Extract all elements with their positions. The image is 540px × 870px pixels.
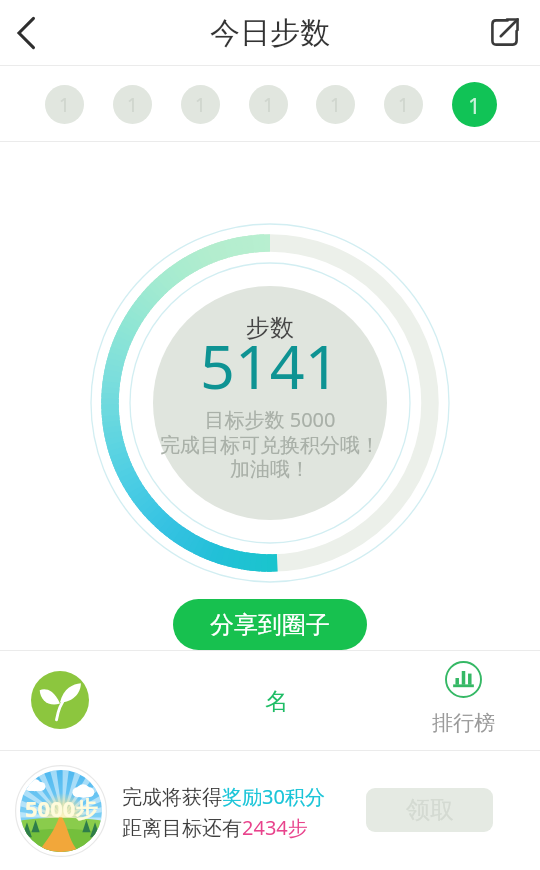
- button[interactable]: 1: [452, 82, 497, 127]
- button[interactable]: 1: [249, 85, 288, 124]
- button[interactable]: 名: [232, 667, 320, 735]
- staticText: 5141: [200, 324, 340, 407]
- button[interactable]: 1: [113, 85, 152, 124]
- staticText: 名: [265, 687, 288, 716]
- button[interactable]: 排行榜: [413, 655, 513, 747]
- staticText: 1: [195, 92, 206, 118]
- staticText: 5000步: [25, 793, 98, 823]
- staticText: 步数: [246, 313, 294, 343]
- button[interactable]: Back: [0, 0, 52, 65]
- staticText: 1: [468, 90, 481, 120]
- staticText: 1: [59, 92, 70, 118]
- staticText: 完成将获得奖励30积分: [122, 783, 325, 810]
- staticText: 1: [127, 92, 138, 118]
- button[interactable]: 领取: [366, 788, 493, 832]
- button[interactable]: Plant: [16, 656, 104, 744]
- staticText: 距离目标还有2434步: [122, 814, 308, 841]
- button[interactable]: 1: [181, 85, 220, 124]
- button[interactable]: Share: [478, 0, 530, 65]
- staticText: 分享到圈子: [210, 610, 330, 640]
- staticText: 排行榜: [432, 710, 495, 736]
- button[interactable]: 1: [316, 85, 355, 124]
- staticText: 1: [263, 92, 274, 118]
- staticText: 1: [398, 92, 409, 118]
- staticText: 今日步数: [210, 14, 330, 52]
- staticText: 领取: [406, 795, 454, 825]
- staticText: 1: [330, 92, 341, 118]
- button[interactable]: 1: [384, 85, 423, 124]
- staticText: 目标步数 5000 完成目标可兑换积分哦！ 加油哦！: [160, 406, 380, 482]
- button[interactable]: 1: [45, 85, 84, 124]
- button[interactable]: 分享到圈子: [173, 599, 367, 650]
